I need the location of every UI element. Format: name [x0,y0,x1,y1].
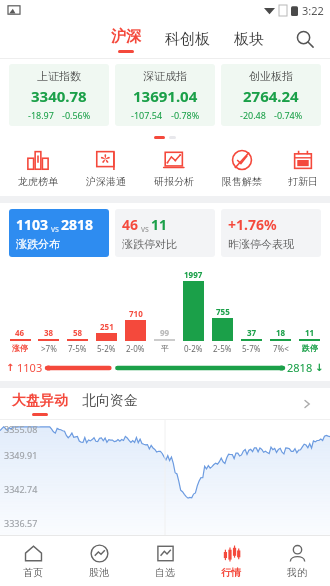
button[interactable]: 710 [121,308,150,341]
button[interactable]: 龙虎榜单 [4,147,72,190]
button[interactable]: 深证成指 [115,64,215,126]
button[interactable]: 科创板 [161,22,214,57]
staticText: 北向资金 [82,392,138,410]
button[interactable]: 46 [115,209,215,257]
staticText: -18.97 [28,109,54,121]
staticText: 11 [305,327,315,338]
staticText: 股池 [89,566,109,579]
button[interactable]: 1997 [179,269,208,341]
button[interactable]: 创业板指 [221,64,321,126]
staticText: 13691.04 [133,86,198,106]
button[interactable]: +1.76% [221,209,321,257]
button[interactable]: 股池 [66,536,132,586]
button[interactable]: 37 [237,327,266,341]
staticText: 深证成指 [143,69,187,83]
staticText: 11 [151,215,168,234]
staticText: >7% [41,343,57,354]
staticText: 46 [15,327,25,338]
button[interactable]: 板块 [230,22,268,57]
button[interactable]: More [296,393,318,415]
staticText: -107.54 [131,109,163,121]
staticText: 7-5% [68,343,87,354]
button[interactable]: 11 [295,327,324,341]
button[interactable]: 研报分析 [140,147,208,190]
button[interactable]: 大盘异动 [12,392,68,416]
button[interactable]: 1103 [9,209,109,257]
button[interactable]: 18 [266,327,295,341]
button[interactable]: 我的 [264,536,330,586]
staticText: 2-5% [213,343,232,354]
button[interactable]: 上证指数 [9,64,109,126]
staticText: -0.56% [62,109,91,121]
staticText: 2764.24 [243,86,299,106]
staticText: 打新日 [288,175,318,188]
staticText: 5-7% [242,343,261,354]
staticText: 研报分析 [154,175,194,188]
button[interactable]: 沪深港通 [72,147,140,190]
button[interactable]: 755 [208,306,237,341]
staticText: 99 [160,327,170,338]
staticText: 18 [276,327,286,338]
staticText: 昨涨停今表现 [228,237,294,251]
staticText: vs [51,223,59,234]
staticText: 行情 [221,566,241,579]
staticText: 上证指数 [37,69,81,83]
button[interactable]: 打新日 [276,147,330,190]
button[interactable]: 限售解禁 [208,147,276,190]
staticText: 板块 [234,30,264,49]
staticText: 涨跌停对比 [122,237,177,251]
staticText: 3336.57 [4,517,38,529]
staticText: -0.74% [274,109,303,121]
staticText: 710 [129,308,143,319]
button[interactable]: 46 [6,327,34,341]
button[interactable]: 首页 [0,536,66,586]
staticText: -20.48 [240,109,266,121]
staticText: 0-2% [184,343,203,354]
button[interactable]: Search [290,24,320,54]
button[interactable]: 行情 [198,536,264,586]
staticText: 3349.91 [4,449,38,461]
button[interactable]: 自选 [132,536,198,586]
staticText: 46 [122,215,139,234]
staticText: 58 [73,327,83,338]
staticText: 38 [44,327,54,338]
staticText: vs [141,223,149,234]
staticText: 涨跌分布 [16,237,60,251]
staticText: 沪深 [111,27,141,46]
button[interactable]: 沪深 [107,27,145,53]
staticText: 2-0% [126,343,145,354]
staticText: 3:22 [302,3,324,18]
button[interactable]: 北向资金 [82,392,138,416]
staticText: 1103 [17,360,43,375]
staticText: -0.78% [171,109,200,121]
staticText: 我的 [287,566,307,579]
staticText: +1.76% [228,215,277,234]
staticText: 限售解禁 [222,175,262,188]
staticText: 平 [161,343,169,353]
staticText: 龙虎榜单 [18,175,58,188]
staticText: 首页 [23,566,43,579]
staticText: ↑ [6,362,15,374]
staticText: 跌停 [302,343,318,353]
staticText: 涨停 [12,343,28,353]
staticText: 251 [100,321,114,332]
staticText: 1103 [16,215,49,234]
button[interactable]: 251 [92,321,121,341]
staticText: 3355.08 [4,423,38,435]
button[interactable]: 99 [150,327,179,341]
staticText: 3340.78 [31,86,87,106]
staticText: 2818 [287,360,313,375]
staticText: 科创板 [165,30,210,49]
staticText: 37 [247,327,257,338]
staticText: 大盘异动 [12,392,68,410]
staticText: 自选 [155,566,175,579]
staticText: ↓ [315,362,324,374]
staticText: 1997 [184,269,203,280]
button[interactable]: 58 [63,327,92,341]
staticText: 755 [216,306,230,317]
staticText: 创业板指 [249,69,293,83]
staticText: 2818 [61,215,94,234]
button[interactable]: 38 [34,327,63,341]
staticText: 沪深港通 [86,175,126,188]
staticText: 5-2% [97,343,116,354]
